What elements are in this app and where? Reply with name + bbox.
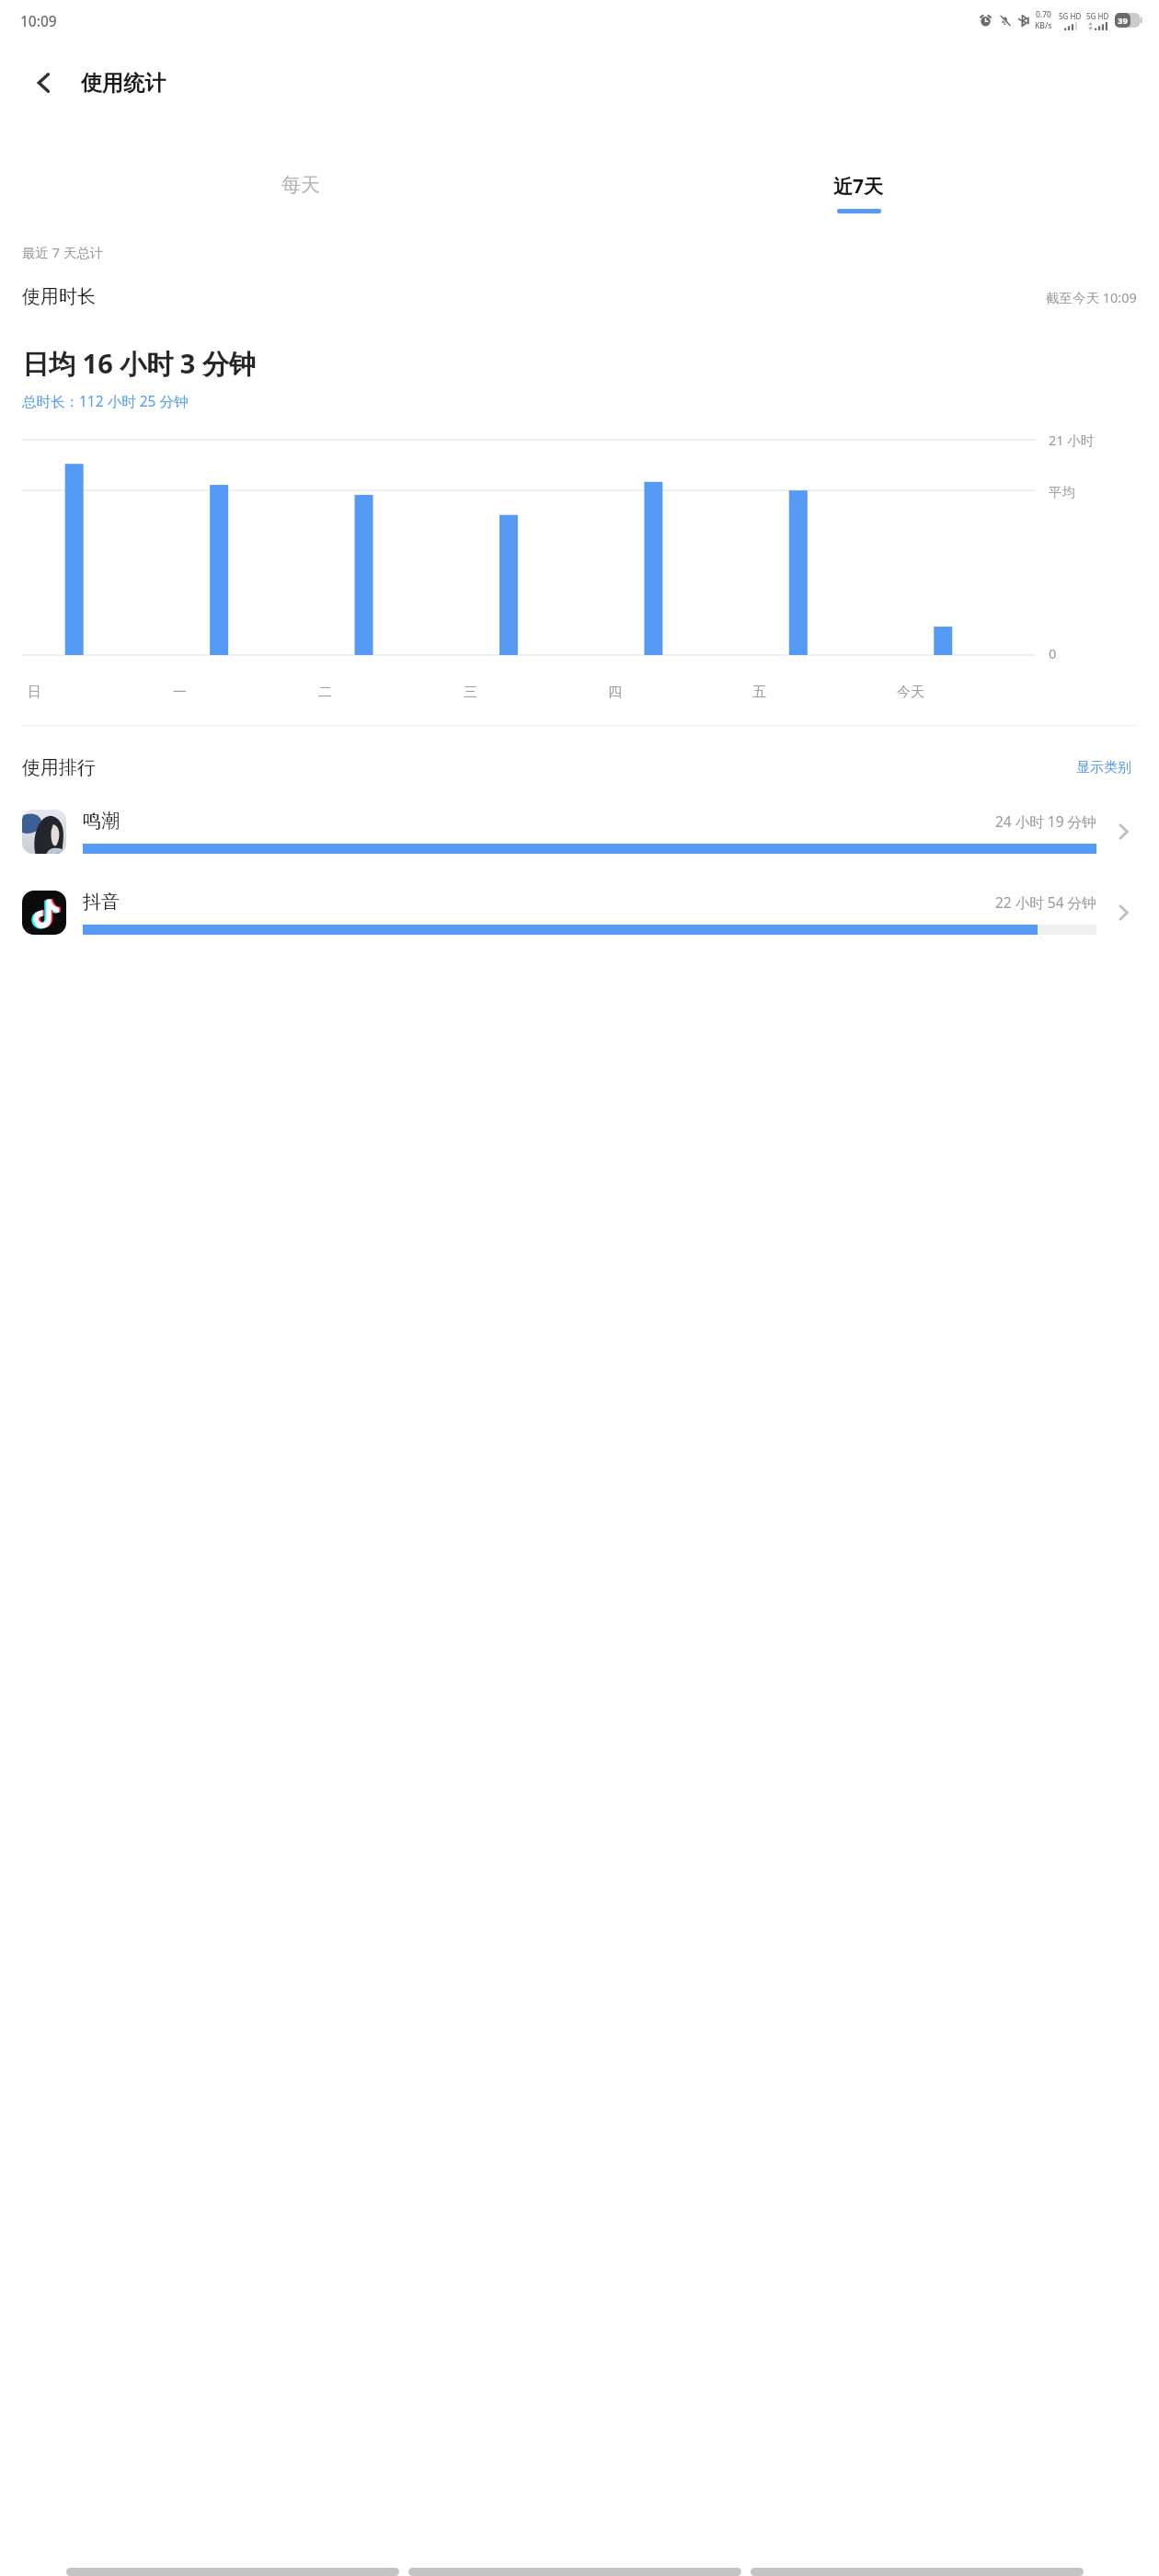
staticText: 截至今天 10:09 [1046, 288, 1137, 306]
staticText: 22 小时 54 分钟 [995, 892, 1096, 912]
staticText: 0.70 [1036, 9, 1051, 20]
button[interactable]: 导航 [751, 2568, 1084, 2576]
staticText: 平均 [1049, 484, 1075, 500]
button[interactable]: 导航 [408, 2568, 741, 2576]
staticText: 显示类别 [1076, 759, 1131, 776]
staticText: 10:09 [20, 11, 57, 30]
staticText: 最近 7 天总计 [22, 243, 104, 261]
staticText: 抖音 [83, 891, 120, 914]
staticText: 三 [464, 684, 477, 701]
staticText: 使用排行 [22, 756, 96, 779]
staticText: 每天 [281, 173, 320, 197]
staticText: 近7天 [833, 173, 884, 200]
staticText: 五 [752, 684, 766, 701]
staticText: 日 [28, 684, 41, 701]
button[interactable]: 近7天 [579, 173, 1137, 213]
staticText: 5G HD [1086, 11, 1109, 21]
button[interactable]: 显示类别 [1071, 753, 1137, 782]
staticText: 一 [173, 684, 187, 701]
staticText: 使用时长 [22, 285, 96, 308]
staticText: 四 [608, 684, 622, 701]
staticText: 21 小时 [1049, 431, 1095, 449]
button[interactable]: 导航 [66, 2568, 399, 2576]
staticText: 5G HD [1059, 11, 1082, 21]
staticText: 39 [1118, 15, 1128, 27]
button[interactable]: 鸣潮 [0, 804, 1159, 859]
staticText: 0 [1049, 644, 1057, 662]
staticText: 鸣潮 [83, 810, 120, 833]
button[interactable]: 每天 [22, 173, 579, 211]
staticText: 二 [318, 684, 332, 701]
staticText: 今天 [897, 684, 924, 701]
staticText: 总时长：112 小时 25 分钟 [22, 391, 189, 410]
other: 查看详情 [1109, 818, 1137, 845]
button[interactable]: 抖音 [0, 885, 1159, 940]
button[interactable]: 返回 [18, 57, 70, 109]
staticText: KB/s [1035, 20, 1052, 31]
other: 查看详情 [1109, 899, 1137, 926]
staticText: 日均 16 小时 3 分钟 [22, 345, 256, 382]
staticText: 24 小时 19 分钟 [995, 811, 1096, 831]
staticText: 使用统计 [81, 70, 166, 97]
